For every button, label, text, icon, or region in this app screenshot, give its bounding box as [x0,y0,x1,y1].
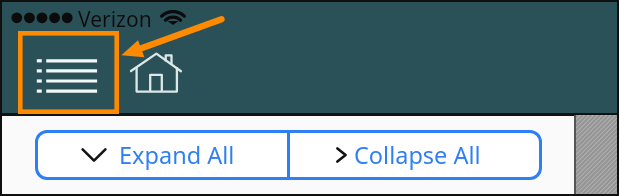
button[interactable]: Menu [18,31,119,114]
button[interactable]: Home [128,50,184,95]
button[interactable]: Expand All [35,130,289,180]
button[interactable]: Collapse All [289,130,542,180]
staticText: Verizon [78,5,152,34]
staticText: Expand All [119,139,235,171]
staticText: Collapse All [354,139,481,171]
